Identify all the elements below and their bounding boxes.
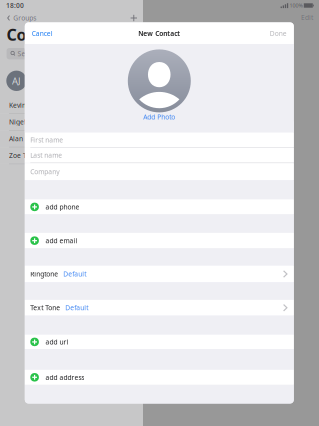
button[interactable]: Kevin Mitchell <box>0 97 143 114</box>
staticText: Company <box>30 167 59 176</box>
staticText: add url <box>45 337 68 346</box>
button[interactable]: Edit <box>296 11 319 24</box>
staticText: 100% <box>289 2 302 9</box>
staticText: add address <box>45 373 84 382</box>
button[interactable]: Add contact <box>125 11 143 25</box>
staticText: Last name <box>30 151 62 160</box>
button[interactable]: add phone <box>25 199 294 214</box>
staticText: AJ <box>12 75 21 87</box>
button[interactable]: Add Photo <box>25 44 294 132</box>
button[interactable]: add email <box>25 233 294 248</box>
staticText: Edit <box>301 13 313 22</box>
button[interactable]: Ringtone <box>25 266 294 282</box>
staticText: New Contact <box>138 29 180 38</box>
staticText: Default <box>63 270 86 278</box>
staticText: add phone <box>45 202 79 211</box>
staticText: Ringtone <box>30 270 58 278</box>
staticText: Text Tone <box>30 303 60 312</box>
button[interactable]: Nigel Abbott <box>0 114 143 131</box>
staticText: Cancel <box>32 29 53 38</box>
staticText: Add Photo <box>143 112 175 121</box>
staticText: Contacts <box>6 24 76 45</box>
staticText: Default <box>65 303 88 312</box>
button[interactable]: Done <box>262 22 294 44</box>
staticText: Nigel Abbott <box>9 117 48 126</box>
staticText: First name <box>30 135 63 144</box>
button[interactable]: Cancel <box>25 22 61 44</box>
staticText: Search <box>17 49 39 58</box>
staticText: Groups <box>13 14 36 22</box>
staticText: Done <box>270 29 287 38</box>
staticText: Alan Greene <box>9 134 49 143</box>
button[interactable]: add address <box>25 370 294 385</box>
button[interactable]: Alan Greene <box>0 131 143 147</box>
staticText: Zoe Turner <box>9 151 44 160</box>
button[interactable]: Zoe Turner <box>0 147 143 164</box>
button[interactable]: Text Tone <box>25 300 294 316</box>
staticText: Kevin Mitchell <box>9 101 53 110</box>
staticText: add email <box>45 236 77 245</box>
button[interactable]: add url <box>25 335 294 349</box>
staticText: 18:00 <box>6 1 24 10</box>
button[interactable]: Groups <box>0 11 41 25</box>
